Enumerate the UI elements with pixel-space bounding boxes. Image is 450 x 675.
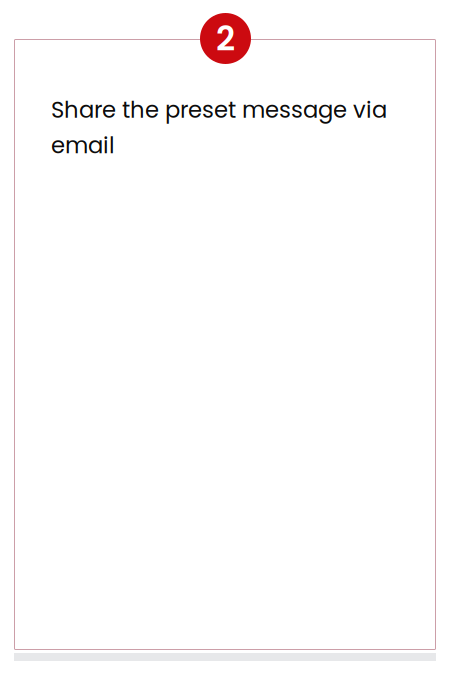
button[interactable]: Step 2 [200, 13, 251, 64]
staticText: Share the preset message via email [51, 92, 387, 163]
staticText: 2 [216, 15, 235, 62]
